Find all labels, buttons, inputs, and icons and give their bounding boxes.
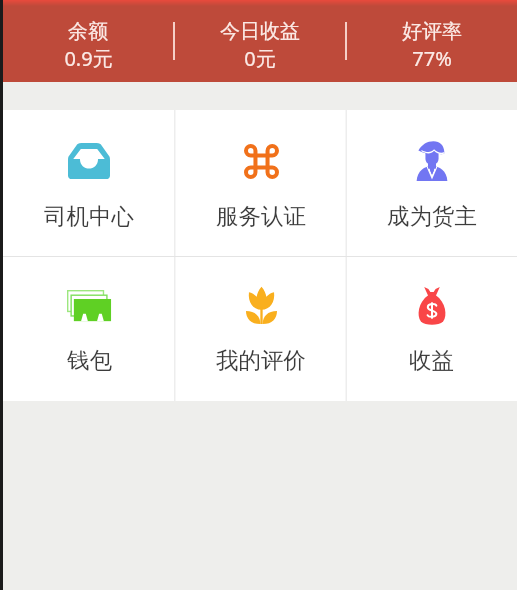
staticText: 77%	[412, 45, 452, 72]
staticText: 收益	[409, 346, 454, 374]
button[interactable]: 收益	[346, 256, 517, 401]
staticText: 服务认证	[216, 202, 306, 230]
staticText: 余额	[68, 19, 108, 44]
button[interactable]: 服务认证	[175, 110, 346, 256]
button[interactable]: 我的评价	[175, 256, 346, 401]
staticText: 0元	[244, 45, 276, 72]
button[interactable]: 今日收益	[175, 0, 345, 82]
staticText: 我的评价	[216, 346, 306, 374]
staticText: 今日收益	[220, 19, 300, 44]
button[interactable]: 钱包	[3, 256, 175, 401]
staticText: 司机中心	[44, 202, 134, 230]
staticText: 成为货主	[387, 202, 477, 230]
button[interactable]: 司机中心	[3, 110, 175, 256]
button[interactable]: 成为货主	[346, 110, 517, 256]
staticText: 好评率	[402, 19, 462, 44]
staticText: 钱包	[67, 346, 112, 374]
button[interactable]: 好评率	[347, 0, 517, 82]
button[interactable]: 余额	[3, 0, 173, 82]
staticText: 0.9元	[64, 45, 113, 72]
